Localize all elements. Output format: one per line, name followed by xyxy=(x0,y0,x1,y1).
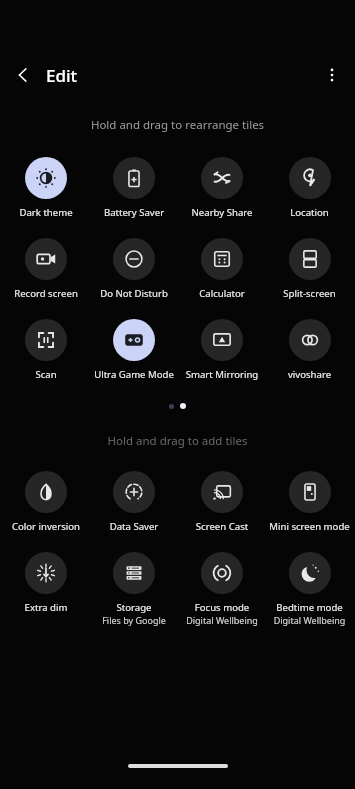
button[interactable]: Location xyxy=(266,151,353,219)
button[interactable]: Ultra Game Mode xyxy=(90,313,178,381)
button[interactable]: Data Saver xyxy=(90,465,178,533)
staticText: Location xyxy=(266,206,353,219)
button[interactable]: vivoshare xyxy=(266,313,353,381)
button[interactable]: Smart Mirroring xyxy=(178,313,266,381)
button[interactable]: More options xyxy=(309,52,355,98)
staticText: Dark theme xyxy=(2,206,90,219)
button[interactable]: Bedtime mode xyxy=(266,546,353,626)
button[interactable]: Record screen xyxy=(2,232,90,300)
staticText: Digital Wellbeing xyxy=(266,614,353,626)
staticText: Split-screen xyxy=(266,287,353,300)
button[interactable]: Calculator xyxy=(178,232,266,300)
staticText: Smart Mirroring xyxy=(178,368,266,381)
button[interactable]: Scan xyxy=(2,313,90,381)
button[interactable]: Mini screen mode xyxy=(266,465,353,533)
button[interactable]: Dark theme xyxy=(2,151,90,219)
button[interactable]: Back xyxy=(0,52,46,98)
staticText: Color inversion xyxy=(2,520,90,533)
staticText: Focus mode xyxy=(178,601,266,614)
button[interactable]: Do Not Disturb xyxy=(90,232,178,300)
staticText: Ultra Game Mode xyxy=(90,368,178,381)
staticText: Data Saver xyxy=(90,520,178,533)
button[interactable]: Extra dim xyxy=(2,546,90,614)
button[interactable]: Focus mode xyxy=(178,546,266,626)
staticText: Files by Google xyxy=(90,614,178,626)
staticText: Hold and drag to rearrange tiles xyxy=(0,117,355,133)
staticText: Mini screen mode xyxy=(266,520,353,533)
staticText: Digital Wellbeing xyxy=(178,614,266,626)
staticText: Do Not Disturb xyxy=(90,287,178,300)
staticText: Extra dim xyxy=(2,601,90,614)
staticText: Record screen xyxy=(2,287,90,300)
staticText: Bedtime mode xyxy=(266,601,353,614)
staticText: Hold and drag to add tiles xyxy=(0,433,355,449)
button[interactable]: Split-screen xyxy=(266,232,353,300)
staticText: Battery Saver xyxy=(90,206,178,219)
staticText: Calculator xyxy=(178,287,266,300)
staticText: Storage xyxy=(90,601,178,614)
button[interactable]: Screen Cast xyxy=(178,465,266,533)
button[interactable]: Nearby Share xyxy=(178,151,266,219)
staticText: Nearby Share xyxy=(178,206,266,219)
staticText: Edit xyxy=(46,64,78,87)
button[interactable]: Storage xyxy=(90,546,178,626)
staticText: Screen Cast xyxy=(178,520,266,533)
staticText: Scan xyxy=(2,368,90,381)
button[interactable]: Battery Saver xyxy=(90,151,178,219)
staticText: vivoshare xyxy=(266,368,353,381)
button[interactable]: Color inversion xyxy=(2,465,90,533)
